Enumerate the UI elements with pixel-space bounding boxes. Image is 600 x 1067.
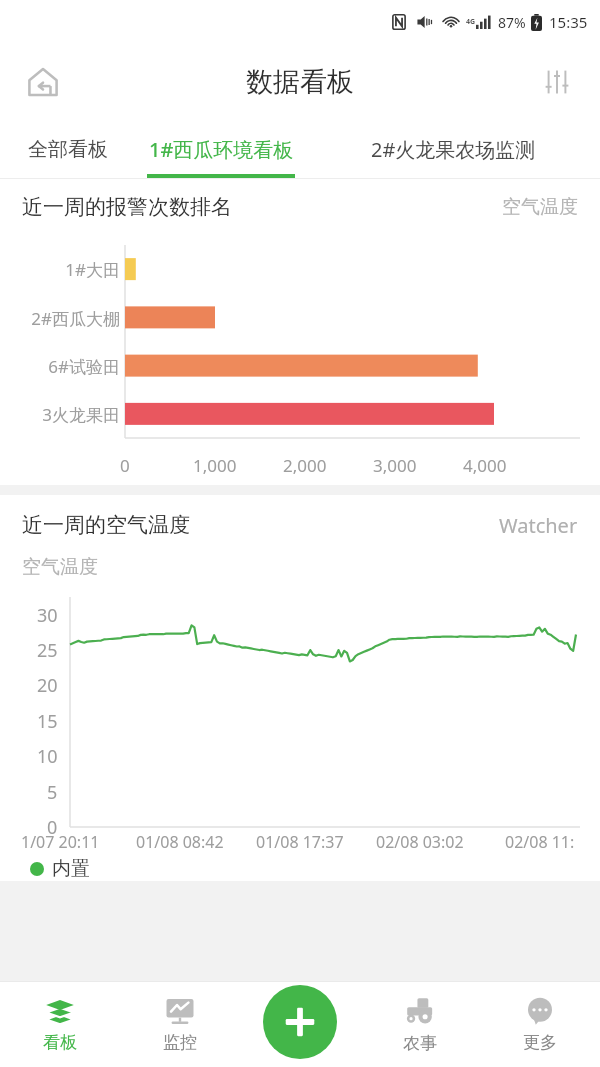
staticText: 87%: [498, 13, 526, 32]
button[interactable]: Add: [263, 985, 337, 1059]
staticText: 0: [47, 815, 58, 840]
staticText: 1#大田: [0, 258, 120, 281]
staticText: 2#西瓜大棚: [0, 307, 120, 330]
button[interactable]: 全部看板: [0, 120, 136, 178]
staticText: 4G: [466, 17, 476, 27]
staticText: 4,000: [463, 454, 507, 477]
button[interactable]: 更多: [480, 981, 600, 1067]
staticText: 01/08 17:37: [256, 831, 344, 853]
button[interactable]: 近一周的空气温度: [0, 495, 600, 881]
staticText: 15:35: [549, 12, 588, 32]
button[interactable]: 农事: [360, 981, 480, 1067]
staticText: 0: [120, 454, 130, 477]
button[interactable]: Filter: [532, 57, 582, 107]
staticText: 3,000: [373, 454, 417, 477]
staticText: 农事: [403, 1033, 437, 1054]
button[interactable]: 看板: [0, 981, 120, 1067]
button[interactable]: 监控: [120, 981, 240, 1067]
staticText: 02/08 03:02: [376, 831, 464, 853]
staticText: 全部看板: [28, 137, 108, 162]
staticText: 6#试验田: [0, 355, 120, 378]
staticText: 内置: [52, 857, 90, 881]
staticText: 空气温度: [502, 195, 578, 219]
button[interactable]: 近一周的报警次数排名: [0, 179, 600, 485]
staticText: 2,000: [283, 454, 327, 477]
staticText: 15: [37, 709, 58, 734]
staticText: 看板: [43, 1032, 77, 1053]
staticText: 监控: [163, 1032, 197, 1053]
staticText: 近一周的空气温度: [22, 512, 190, 538]
staticText: Watcher: [499, 512, 578, 539]
staticText: 5: [47, 780, 58, 805]
button[interactable]: 1#西瓜环境看板: [136, 120, 306, 178]
staticText: 02/08 11:: [505, 831, 575, 853]
staticText: 25: [37, 638, 58, 663]
staticText: 3火龙果田: [0, 403, 120, 426]
button[interactable]: Home: [18, 57, 68, 107]
staticText: 1#西瓜环境看板: [149, 136, 294, 163]
staticText: 20: [37, 673, 58, 698]
staticText: 空气温度: [22, 555, 98, 579]
staticText: 1,000: [193, 454, 237, 477]
staticText: 30: [37, 603, 58, 628]
staticText: 更多: [523, 1032, 557, 1053]
staticText: 2#火龙果农场监测: [371, 136, 536, 163]
staticText: 近一周的报警次数排名: [22, 194, 232, 220]
staticText: 1/07 20:11: [21, 831, 100, 853]
staticText: 10: [37, 744, 58, 769]
staticText: 01/08 08:42: [136, 831, 224, 853]
staticText: 数据看板: [246, 65, 354, 99]
button[interactable]: 2#火龙果农场监测: [306, 120, 600, 178]
